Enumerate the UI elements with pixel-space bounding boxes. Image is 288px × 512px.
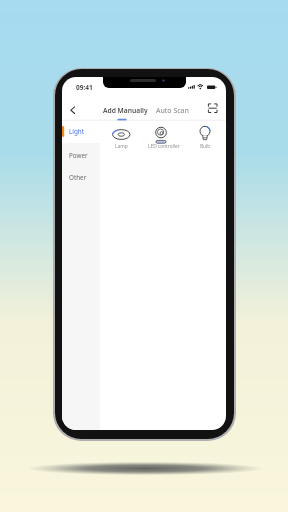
button[interactable]: Add Manually xyxy=(101,100,149,118)
staticText: Power xyxy=(69,151,88,160)
staticText: 09:41 xyxy=(76,83,93,92)
staticText: LED controller xyxy=(148,143,180,150)
button[interactable] xyxy=(64,101,82,119)
staticText: Add Manually xyxy=(103,106,148,115)
button[interactable]: Lamp xyxy=(100,122,142,152)
staticText: Lamp xyxy=(115,143,128,150)
staticText: Light xyxy=(69,127,84,136)
staticText: Other xyxy=(69,173,87,182)
button[interactable]: Other xyxy=(62,165,100,188)
button[interactable]: Bulb xyxy=(184,122,226,152)
button[interactable] xyxy=(205,100,221,116)
button[interactable]: LED controller xyxy=(142,122,184,152)
button[interactable]: Auto Scan xyxy=(153,100,189,118)
button[interactable]: Power xyxy=(62,143,100,166)
button[interactable]: Light xyxy=(62,120,100,143)
staticText: Auto Scan xyxy=(156,106,189,116)
staticText: Bulb xyxy=(200,143,211,150)
